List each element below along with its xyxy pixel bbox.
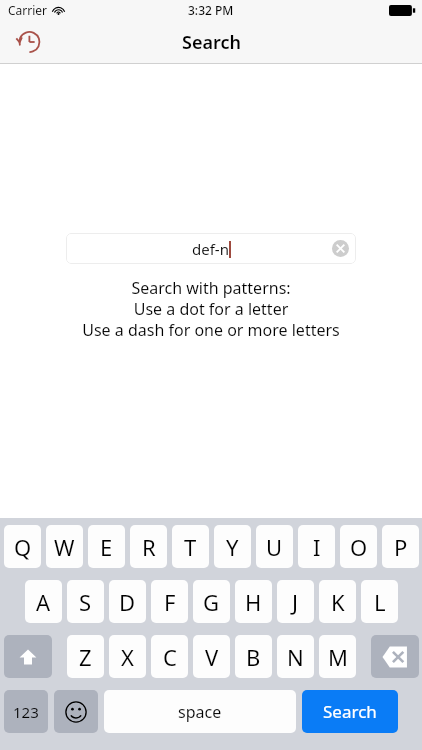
staticText: J: [292, 587, 299, 617]
button[interactable]: M: [319, 635, 356, 678]
button[interactable]: P: [382, 525, 419, 568]
button[interactable]: U: [256, 525, 293, 568]
staticText: space: [178, 701, 222, 723]
staticText: H: [245, 587, 262, 617]
staticText: U: [266, 532, 283, 562]
staticText: 123: [13, 702, 39, 722]
button[interactable]: Q: [4, 525, 41, 568]
staticText: P: [394, 532, 408, 562]
staticText: def-n: [192, 239, 229, 259]
staticText: Z: [79, 642, 92, 672]
button[interactable]: W: [46, 525, 83, 568]
button[interactable]: A: [25, 580, 62, 623]
button[interactable]: E: [88, 525, 125, 568]
button[interactable]: 123: [4, 690, 48, 733]
staticText: B: [246, 642, 261, 672]
button[interactable]: O: [340, 525, 377, 568]
staticText: E: [100, 532, 113, 562]
staticText: Search: [182, 30, 241, 55]
button[interactable]: S: [67, 580, 104, 623]
button[interactable]: L: [361, 580, 398, 623]
button[interactable]: I: [298, 525, 335, 568]
staticText: G: [203, 587, 220, 617]
button[interactable]: N: [277, 635, 314, 678]
staticText: W: [54, 532, 75, 562]
button[interactable]: H: [235, 580, 272, 623]
staticText: Search with patterns: Use a dot for a le…: [82, 277, 340, 341]
button[interactable]: X: [109, 635, 146, 678]
button[interactable]: Y: [214, 525, 251, 568]
button[interactable]: Z: [67, 635, 104, 678]
button[interactable]: Backspace: [371, 635, 419, 678]
staticText: K: [331, 587, 345, 617]
staticText: F: [164, 587, 176, 617]
staticText: L: [374, 587, 386, 617]
button[interactable]: space: [104, 690, 296, 733]
button[interactable]: G: [193, 580, 230, 623]
button[interactable]: K: [319, 580, 356, 623]
button[interactable]: Emoji: [54, 690, 98, 733]
staticText: Y: [226, 532, 239, 562]
button[interactable]: Search: [302, 690, 398, 733]
staticText: X: [121, 642, 134, 672]
button[interactable]: def-n: [66, 233, 356, 264]
button[interactable]: Clear text: [332, 240, 349, 257]
button[interactable]: Shift: [4, 635, 52, 678]
staticText: A: [36, 587, 51, 617]
staticText: Q: [14, 532, 32, 562]
staticText: C: [163, 642, 177, 672]
button[interactable]: B: [235, 635, 272, 678]
staticText: D: [119, 587, 136, 617]
staticText: Carrier: [8, 2, 48, 18]
button[interactable]: J: [277, 580, 314, 623]
staticText: 3:32 PM: [188, 2, 234, 18]
staticText: I: [313, 532, 321, 562]
staticText: V: [205, 642, 219, 672]
button[interactable]: Recent searches: [8, 22, 48, 62]
button[interactable]: D: [109, 580, 146, 623]
button[interactable]: R: [130, 525, 167, 568]
staticText: R: [142, 532, 156, 562]
button[interactable]: T: [172, 525, 209, 568]
staticText: Search: [323, 700, 377, 723]
staticText: O: [350, 532, 368, 562]
button[interactable]: V: [193, 635, 230, 678]
staticText: T: [184, 532, 197, 562]
staticText: S: [79, 587, 92, 617]
staticText: N: [287, 642, 304, 672]
button[interactable]: F: [151, 580, 188, 623]
staticText: M: [328, 642, 348, 672]
button[interactable]: C: [151, 635, 188, 678]
